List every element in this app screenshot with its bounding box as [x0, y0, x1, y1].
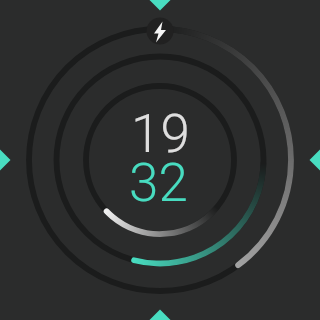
- staticText: 19: [131, 103, 190, 165]
- staticText: 32: [129, 152, 188, 214]
- button[interactable]: 32: [0, 152, 318, 214]
- button[interactable]: 19: [0, 103, 320, 165]
